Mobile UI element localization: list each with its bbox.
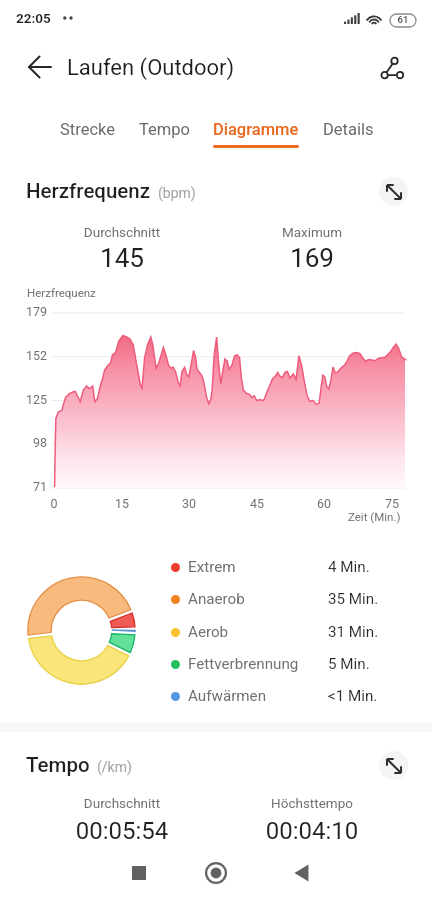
staticText: 152 — [16, 348, 47, 363]
staticText: 125 — [16, 392, 47, 407]
button[interactable]: Extrem — [171, 551, 393, 583]
button[interactable]: Share — [370, 47, 412, 89]
staticText: 30 — [173, 496, 205, 511]
staticText: 75 — [376, 496, 408, 511]
staticText: 0 — [38, 496, 70, 511]
button[interactable]: Expand pace chart — [379, 751, 408, 780]
staticText: Aerob — [188, 623, 328, 641]
button[interactable]: Back — [282, 853, 322, 893]
staticText: 169 — [217, 243, 407, 274]
staticText: Details — [323, 120, 374, 139]
button[interactable]: Details — [318, 118, 379, 150]
staticText: Anaerob — [188, 590, 328, 608]
button[interactable]: Tempo — [134, 118, 195, 150]
staticText: (/km) — [97, 759, 132, 775]
staticText: 22:05 — [16, 10, 51, 26]
staticText: 00:05:54 — [27, 817, 217, 845]
staticText: 4 Min. — [328, 558, 370, 576]
staticText: Strecke — [60, 120, 115, 139]
button[interactable]: Anaerob — [171, 583, 393, 615]
staticText: Herzfrequenz — [26, 179, 151, 203]
staticText: Durchschnitt — [27, 224, 217, 240]
button[interactable]: Aerob — [171, 616, 393, 648]
staticText: 31 Min. — [328, 623, 379, 641]
staticText: 5 Min. — [328, 655, 370, 673]
staticText: 35 Min. — [328, 590, 379, 608]
staticText: 145 — [27, 243, 217, 274]
staticText: Tempo — [26, 753, 90, 777]
button[interactable]: Expand heart rate chart — [379, 177, 408, 206]
staticText: 00:04:10 — [217, 817, 407, 845]
button[interactable]: Aufwärmen — [171, 680, 393, 712]
staticText: Aufwärmen — [188, 687, 328, 705]
button[interactable]: Back — [19, 47, 61, 89]
staticText: 45 — [241, 496, 273, 511]
staticText: 61 — [390, 14, 416, 25]
staticText: <1 Min. — [328, 687, 378, 705]
staticText: 71 — [16, 479, 47, 494]
staticText: Herzfrequenz — [27, 286, 96, 299]
button[interactable]: Diagramme — [208, 118, 304, 150]
staticText: Zeit (Min.) — [348, 510, 401, 523]
staticText: Diagramme — [213, 120, 299, 139]
staticText: Tempo — [139, 120, 190, 139]
staticText: Durchschnitt — [27, 795, 217, 811]
staticText: Maximum — [217, 224, 407, 240]
button[interactable]: Strecke — [55, 118, 120, 150]
staticText: 15 — [106, 496, 138, 511]
button[interactable]: Fettverbrennung — [171, 648, 393, 680]
staticText: 98 — [16, 435, 47, 450]
staticText: Laufen (Outdoor) — [67, 55, 235, 81]
staticText: Höchsttempo — [217, 795, 407, 811]
button[interactable]: Recent apps — [119, 853, 159, 893]
button[interactable]: Home — [196, 853, 236, 893]
staticText: Extrem — [188, 558, 328, 576]
staticText: Fettverbrennung — [188, 655, 328, 673]
staticText: 179 — [16, 304, 47, 319]
staticText: 60 — [308, 496, 340, 511]
staticText: (bpm) — [158, 185, 196, 201]
